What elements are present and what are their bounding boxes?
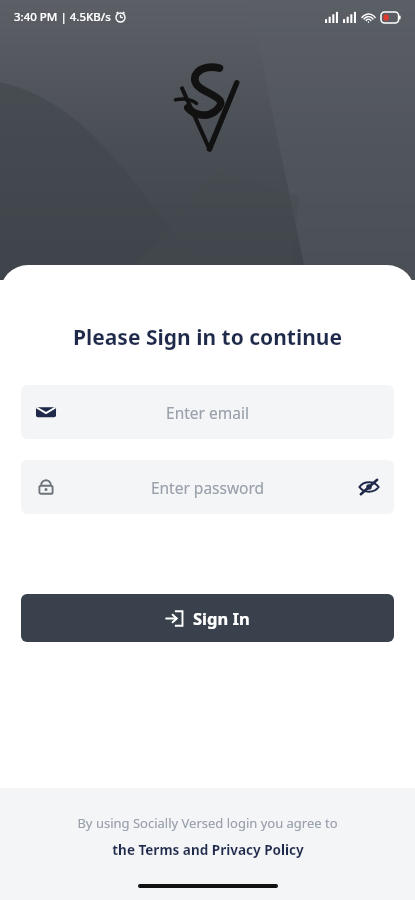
- button[interactable]: the Terms and Privacy Policy: [112, 841, 304, 859]
- staticText: the Terms and Privacy Policy: [112, 841, 304, 859]
- other: Email: [36, 402, 56, 422]
- staticText: Sign In: [193, 607, 250, 629]
- staticText: Enter password: [58, 477, 357, 498]
- button[interactable]: Show password: [357, 475, 381, 499]
- staticText: Please Sign in to continue: [0, 323, 415, 352]
- staticText: Enter email: [58, 402, 357, 423]
- button[interactable]: Email: [21, 385, 394, 439]
- staticText: 3:40 PM | 4.5KB/s: [14, 9, 111, 25]
- button[interactable]: Sign In: [21, 594, 394, 642]
- button[interactable]: Password: [21, 460, 394, 514]
- staticText: By using Socially Versed login you agree…: [0, 814, 415, 832]
- other: Password: [36, 477, 56, 497]
